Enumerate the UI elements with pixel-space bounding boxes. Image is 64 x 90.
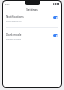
staticText: Dark mode (6, 33, 22, 37)
staticText: Follow system (6, 38, 22, 41)
button[interactable]: Dark mode (53, 34, 58, 37)
button[interactable]: Dark mode (3, 32, 61, 41)
button[interactable]: Notifications (53, 16, 58, 19)
staticText: Notifications (6, 15, 24, 19)
staticText: 9:41 (5, 3, 10, 5)
staticText: Settings (26, 8, 38, 11)
staticText: Push alerts on (6, 20, 22, 23)
button[interactable]: Notifications (3, 14, 61, 23)
